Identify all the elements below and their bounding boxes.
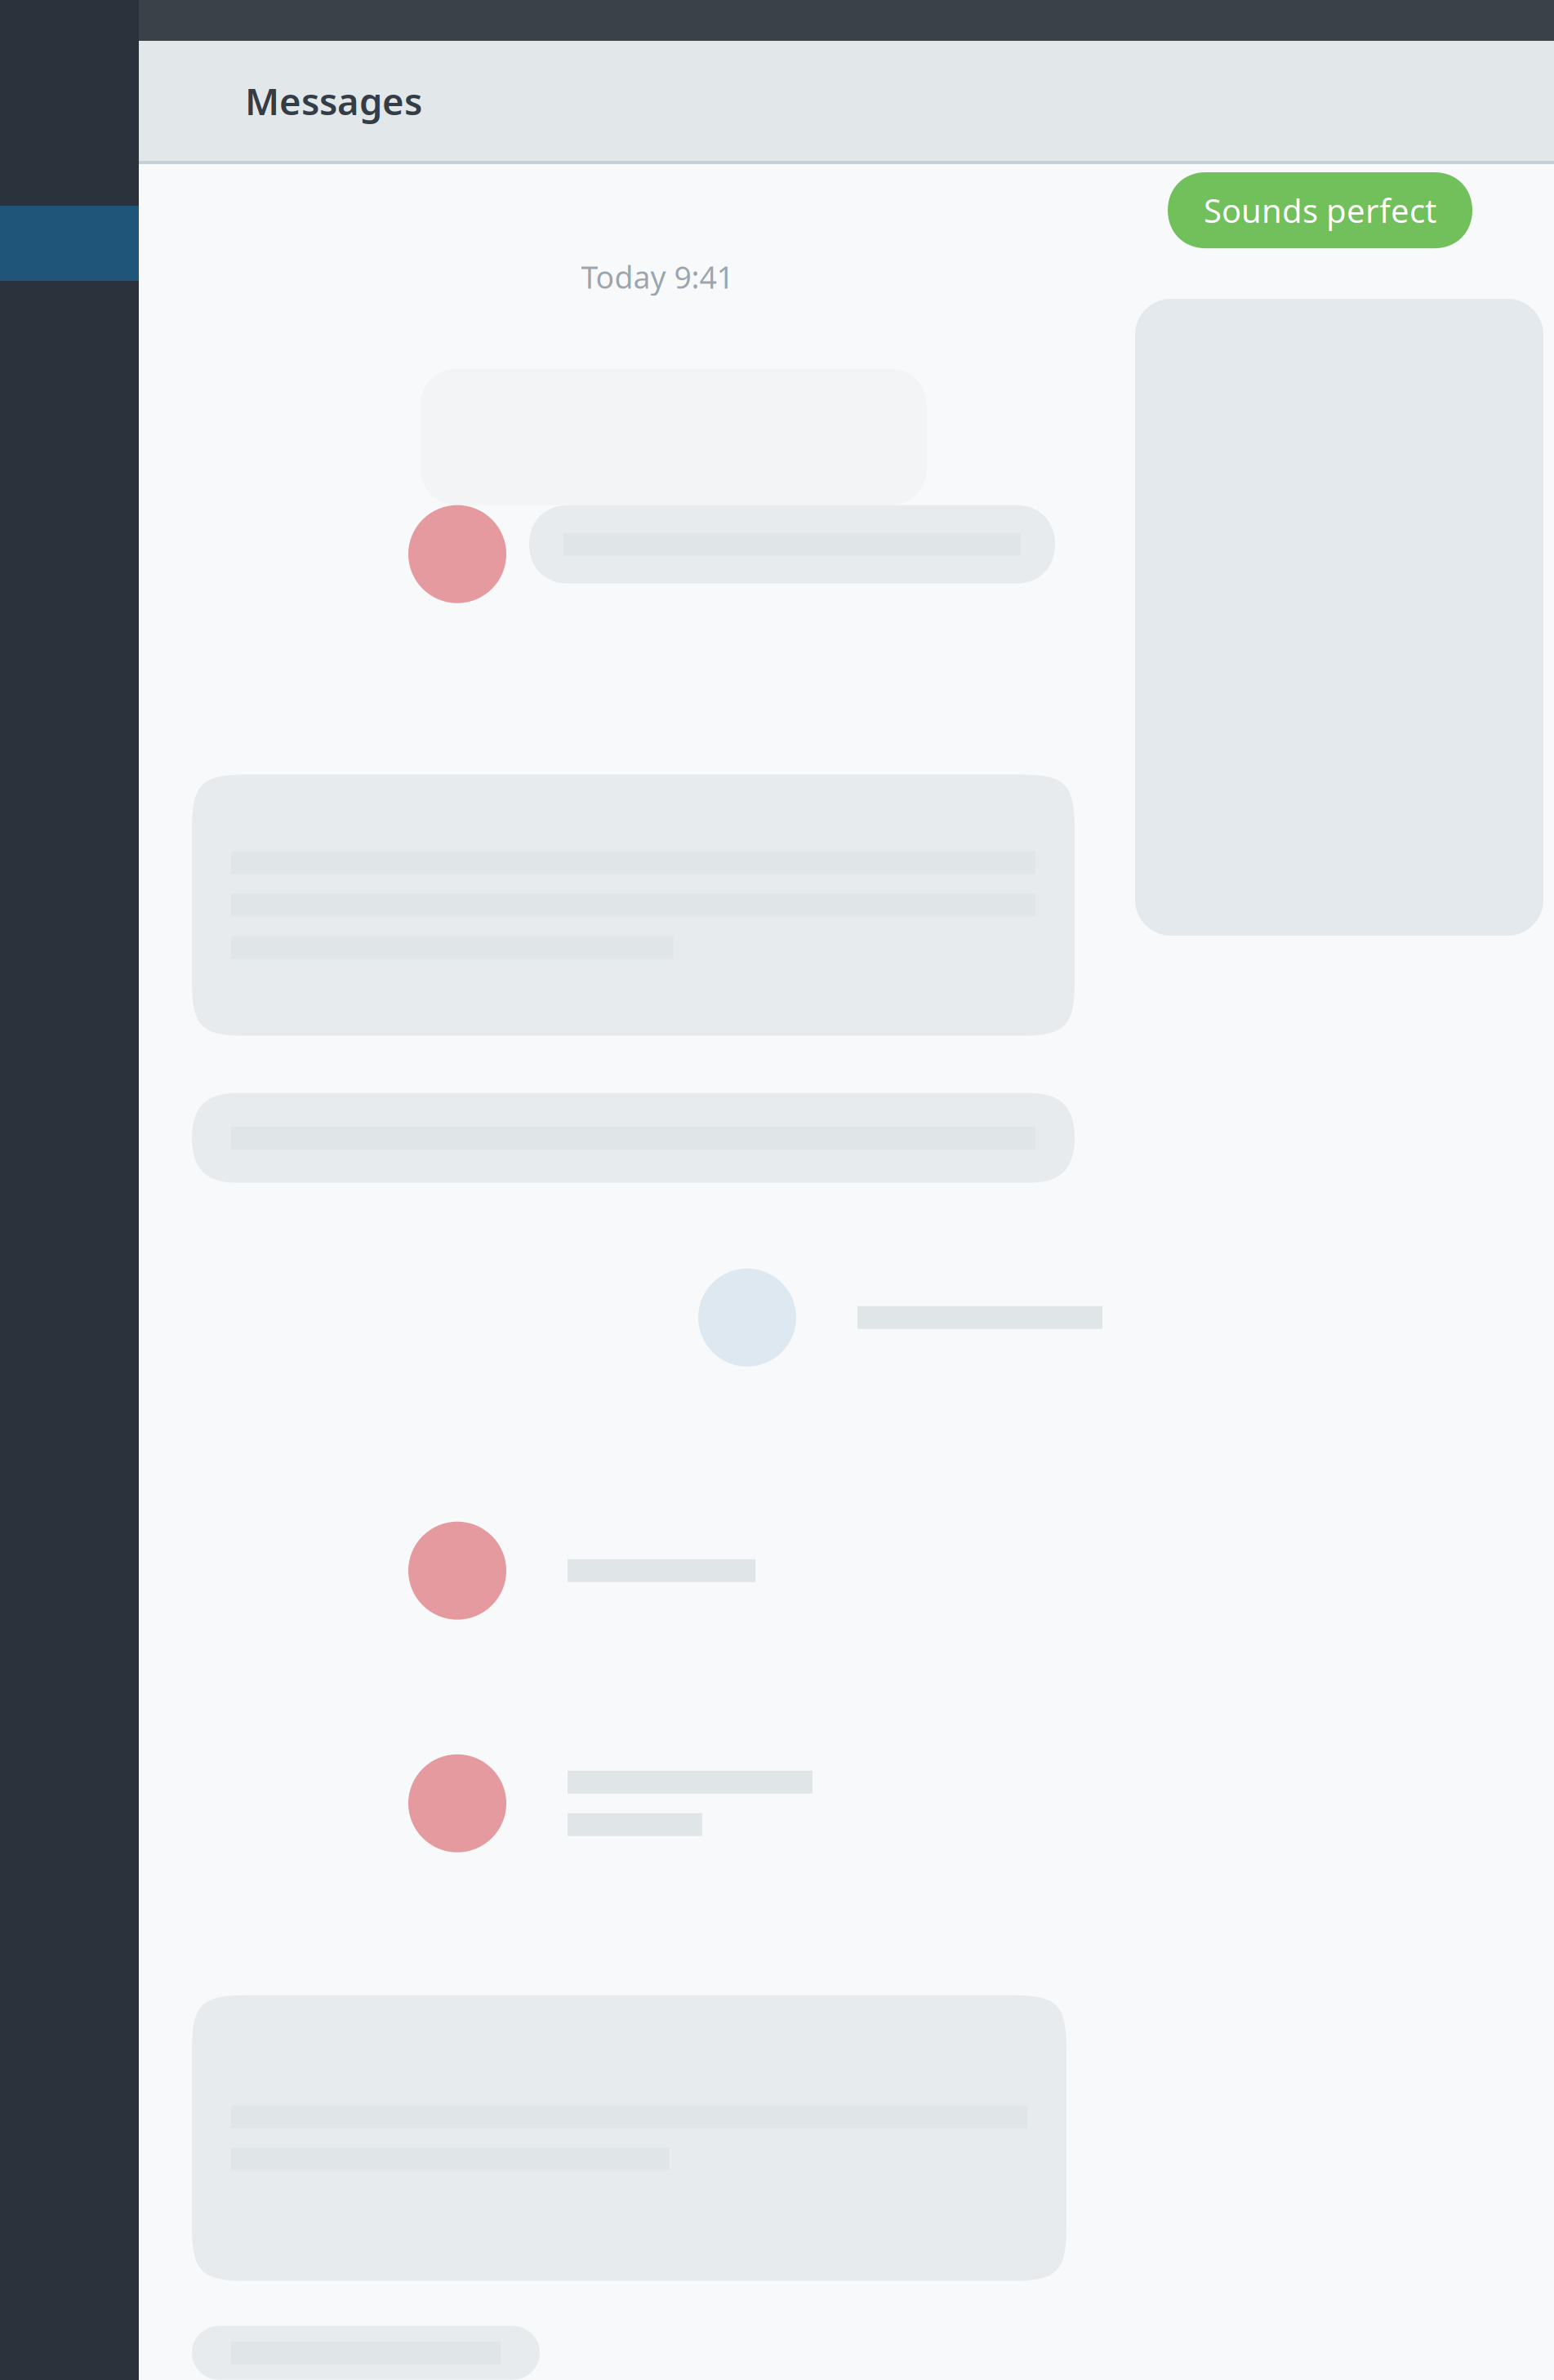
- staticText: Messages: [245, 76, 422, 125]
- button[interactable]: Message from contact: [176, 505, 1521, 603]
- button[interactable]: Conversation item: [176, 1513, 1521, 1628]
- button[interactable]: Sounds perfect: [1168, 172, 1472, 248]
- staticText: Today 9:41: [581, 256, 734, 297]
- button[interactable]: Message: [176, 775, 1521, 1036]
- button[interactable]: Message: [176, 2326, 1521, 2380]
- button[interactable]: Message: [176, 1995, 1521, 2281]
- button[interactable]: Conversation item: [176, 1260, 1521, 1375]
- button[interactable]: Earlier message: [176, 297, 1521, 505]
- button[interactable]: Messages: [139, 62, 455, 140]
- staticText: Sounds perfect: [1204, 189, 1436, 232]
- button[interactable]: Message: [176, 1093, 1521, 1183]
- button[interactable]: Conversation item: [176, 1746, 1521, 1860]
